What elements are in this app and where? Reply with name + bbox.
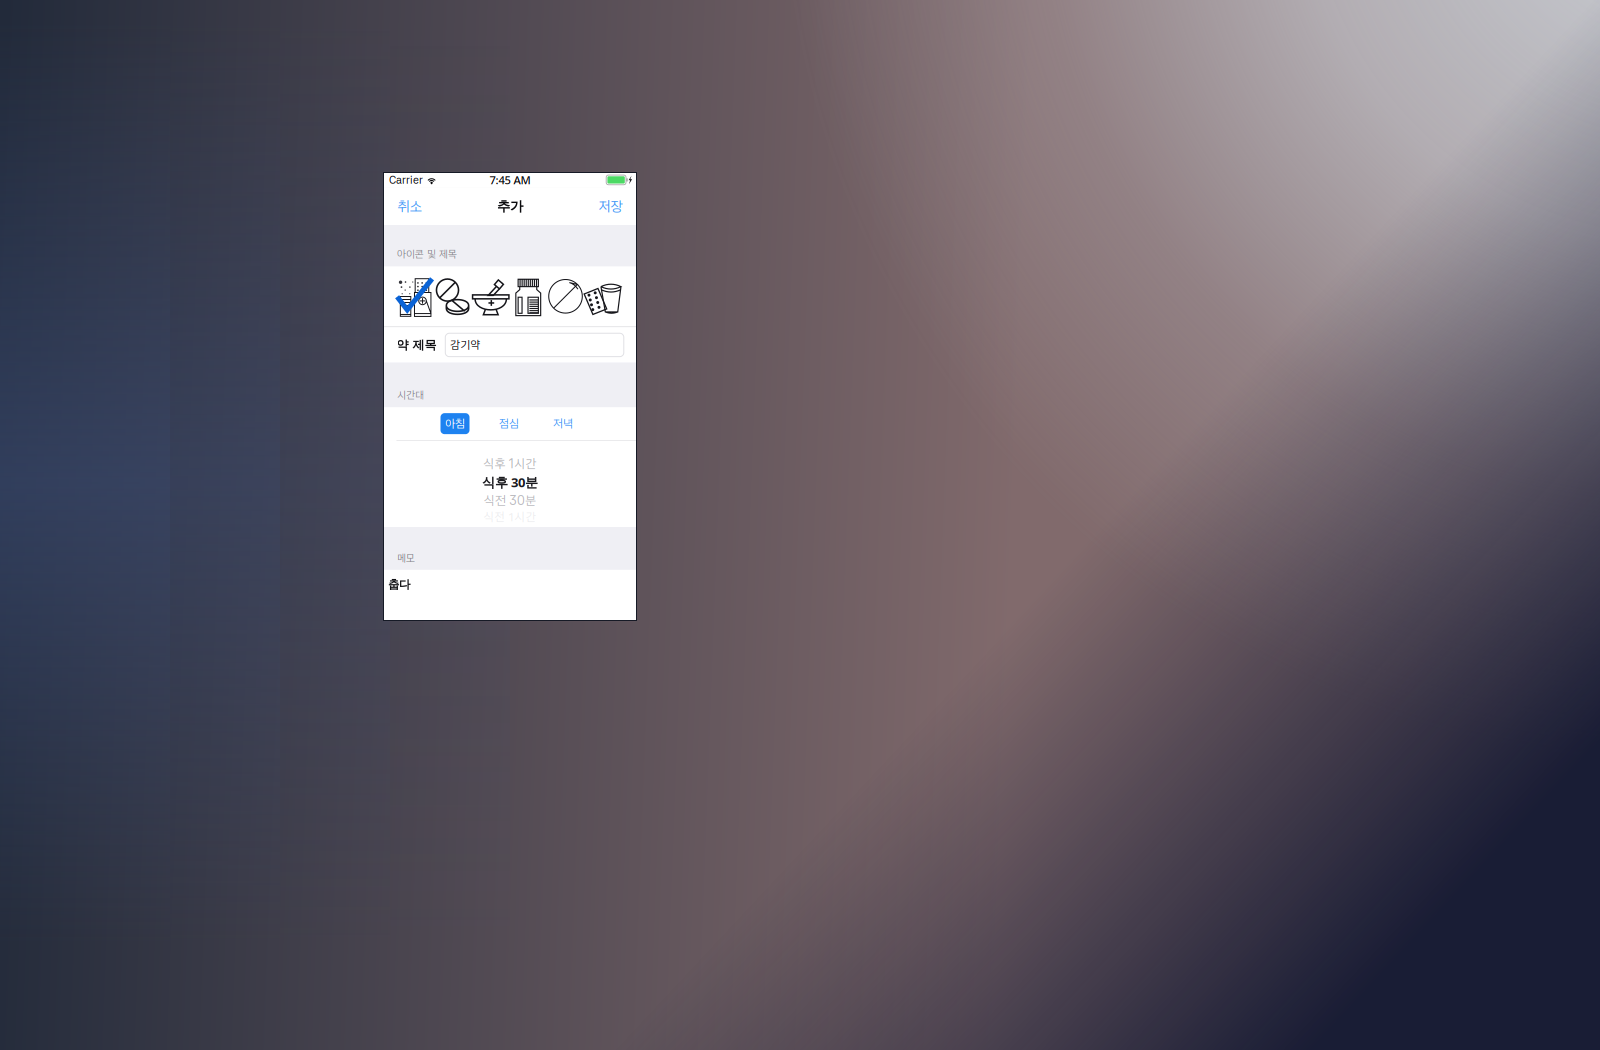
staticText: 저녁	[553, 417, 573, 431]
staticText: 아이콘 및 제목	[397, 248, 457, 260]
staticText: 메모	[397, 552, 415, 564]
staticText: 저장	[598, 198, 622, 215]
button[interactable]: 알약	[434, 276, 472, 316]
staticText: 식전 30분	[484, 493, 536, 508]
staticText: 식전 1시간	[483, 510, 536, 524]
button[interactable]: 물약	[584, 276, 622, 316]
button[interactable]: 저녁	[548, 413, 577, 434]
button[interactable]: 정제	[547, 276, 584, 316]
staticText: 식후 1시간	[483, 456, 536, 471]
staticText: 아침	[445, 417, 465, 431]
button[interactable]: 아침	[440, 413, 469, 434]
staticText: 7:45 AM	[489, 172, 530, 188]
button[interactable]: 취소	[391, 188, 427, 225]
button[interactable]: 조제약	[472, 276, 509, 316]
staticText: 춥다	[388, 577, 410, 592]
button[interactable]: 가루약	[397, 276, 434, 316]
staticText: 시간대	[397, 389, 424, 401]
button[interactable]: 저장	[592, 188, 628, 225]
staticText: 식후 30분	[482, 473, 538, 491]
staticText: 약 제목	[396, 337, 436, 352]
staticText: 점심	[499, 417, 519, 431]
staticText: 감기약	[450, 338, 480, 352]
staticText: Carrier	[389, 173, 423, 186]
staticText: 추가	[497, 198, 523, 215]
button[interactable]: 점심	[494, 413, 523, 434]
button[interactable]: 약병	[509, 276, 547, 316]
staticText: 취소	[397, 198, 421, 215]
